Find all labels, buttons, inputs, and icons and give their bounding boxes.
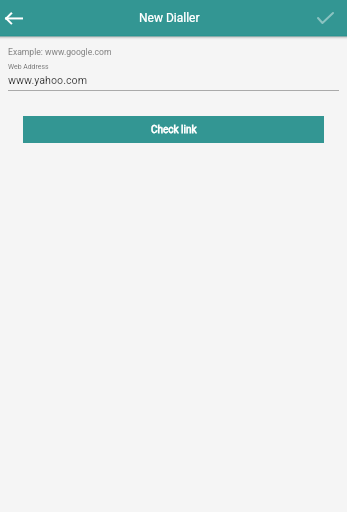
- button[interactable]: Check link: [23, 116, 324, 143]
- staticText: www.yahoo.com: [8, 74, 88, 87]
- button[interactable]: Done: [313, 6, 337, 30]
- staticText: New Dialler: [139, 11, 200, 25]
- button[interactable]: Back: [0, 4, 28, 32]
- staticText: Web Address: [8, 63, 49, 71]
- staticText: Example: www.google.com: [8, 47, 112, 57]
- staticText: Check link: [151, 124, 197, 136]
